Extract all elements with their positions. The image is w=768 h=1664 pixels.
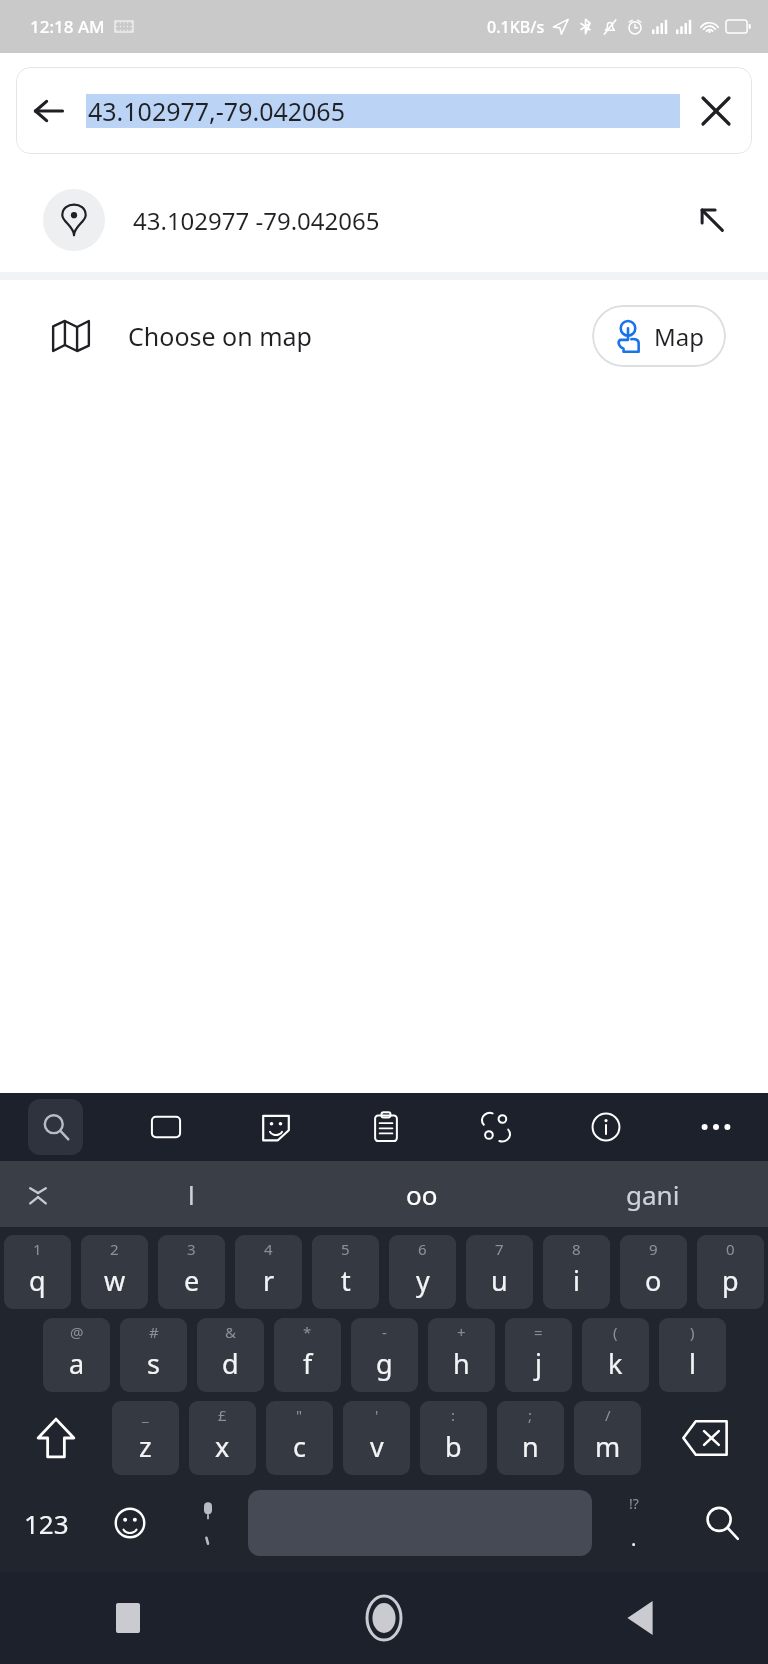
- button[interactable]: Backspace: [641, 1401, 768, 1475]
- button[interactable]: gani: [537, 1161, 768, 1227]
- staticText: 12:18 AM: [30, 15, 105, 38]
- staticText: c: [293, 1428, 306, 1465]
- button[interactable]: :: [420, 1401, 487, 1475]
- button[interactable]: 4: [235, 1235, 302, 1309]
- staticText: 43.102977,-79.042065: [88, 94, 345, 128]
- button[interactable]: +: [428, 1318, 495, 1392]
- button[interactable]: @: [43, 1318, 110, 1392]
- staticText: £: [218, 1405, 227, 1425]
- button[interactable]: ': [343, 1401, 410, 1475]
- button[interactable]: Search: [676, 1484, 768, 1562]
- button[interactable]: *: [274, 1318, 341, 1392]
- staticText: 1: [33, 1239, 42, 1259]
- staticText: 6: [418, 1239, 427, 1259]
- staticText: v: [370, 1428, 384, 1465]
- staticText: -: [382, 1322, 387, 1342]
- staticText: ): [690, 1322, 695, 1342]
- button[interactable]: 123: [0, 1484, 92, 1562]
- button[interactable]: 6: [389, 1235, 456, 1309]
- button[interactable]: Period: [592, 1484, 676, 1562]
- button[interactable]: Back: [512, 1572, 768, 1664]
- button[interactable]: 1: [4, 1235, 71, 1309]
- button[interactable]: (: [582, 1318, 649, 1392]
- staticText: h: [453, 1345, 470, 1382]
- staticText: *: [303, 1322, 312, 1342]
- staticText: f: [303, 1345, 313, 1382]
- staticText: 2: [110, 1239, 119, 1259]
- button[interactable]: Emoji: [92, 1484, 168, 1562]
- staticText: 9: [649, 1239, 658, 1259]
- button[interactable]: &: [197, 1318, 264, 1392]
- button[interactable]: #: [120, 1318, 187, 1392]
- staticText: l: [188, 1177, 195, 1212]
- button[interactable]: ;: [497, 1401, 564, 1475]
- button[interactable]: /: [574, 1401, 641, 1475]
- button[interactable]: 3: [158, 1235, 225, 1309]
- staticText: Choose on map: [128, 319, 312, 353]
- button[interactable]: 8: [543, 1235, 610, 1309]
- button[interactable]: Choose on map: [0, 280, 592, 392]
- button[interactable]: Clipboard: [358, 1099, 414, 1155]
- button[interactable]: l: [76, 1161, 306, 1227]
- button[interactable]: 9: [620, 1235, 687, 1309]
- staticText: oo: [406, 1177, 438, 1212]
- button[interactable]: Insert suggestion: [680, 188, 744, 252]
- button[interactable]: 5: [312, 1235, 379, 1309]
- staticText: +: [457, 1322, 466, 1342]
- button[interactable]: Stickers: [248, 1099, 304, 1155]
- staticText: :: [451, 1405, 456, 1425]
- button[interactable]: 0: [697, 1235, 764, 1309]
- staticText: 0: [726, 1239, 735, 1259]
- button[interactable]: Search: [28, 1099, 83, 1155]
- staticText: s: [147, 1345, 160, 1382]
- staticText: (: [613, 1322, 618, 1342]
- button[interactable]: Shift: [0, 1401, 112, 1475]
- button[interactable]: 43.102977 -79.042065: [0, 168, 768, 272]
- staticText: a: [69, 1345, 85, 1382]
- staticText: ": [296, 1405, 303, 1425]
- button[interactable]: Translate: [468, 1099, 524, 1155]
- button[interactable]: oo: [306, 1161, 537, 1227]
- staticText: ': [375, 1405, 379, 1425]
- staticText: n: [522, 1428, 539, 1465]
- staticText: ;: [528, 1405, 533, 1425]
- staticText: _: [142, 1405, 149, 1425]
- staticText: 5: [341, 1239, 350, 1259]
- staticText: =: [534, 1322, 543, 1342]
- button[interactable]: =: [505, 1318, 572, 1392]
- button[interactable]: -: [351, 1318, 418, 1392]
- button[interactable]: ): [659, 1318, 726, 1392]
- staticText: 0.1KB/s: [487, 16, 545, 38]
- button[interactable]: 2: [81, 1235, 148, 1309]
- staticText: gani: [626, 1177, 680, 1212]
- staticText: /: [605, 1405, 611, 1425]
- staticText: r: [263, 1262, 275, 1299]
- staticText: !?: [629, 1494, 639, 1513]
- button[interactable]: Back: [16, 67, 752, 154]
- staticText: y: [416, 1262, 430, 1299]
- button[interactable]: Info: [578, 1099, 634, 1155]
- staticText: g: [376, 1345, 393, 1382]
- staticText: @: [70, 1322, 84, 1342]
- staticText: u: [491, 1262, 508, 1299]
- button[interactable]: Back: [16, 78, 82, 144]
- staticText: &: [225, 1322, 236, 1342]
- button[interactable]: Map: [592, 305, 726, 367]
- staticText: 8: [572, 1239, 581, 1259]
- button[interactable]: _: [112, 1401, 179, 1475]
- staticText: 43.102977 -79.042065: [133, 204, 380, 237]
- button[interactable]: Voice input and comma: [168, 1484, 248, 1562]
- button[interactable]: Home: [256, 1572, 512, 1664]
- staticText: x: [215, 1428, 230, 1465]
- button[interactable]: Clear: [680, 75, 752, 147]
- button[interactable]: 7: [466, 1235, 533, 1309]
- button[interactable]: Recents: [0, 1572, 256, 1664]
- staticText: z: [139, 1428, 152, 1465]
- button[interactable]: More options: [688, 1099, 744, 1155]
- button[interactable]: Collapse suggestions: [0, 1161, 76, 1227]
- button[interactable]: £: [189, 1401, 256, 1475]
- button[interactable]: GIF: [138, 1099, 194, 1155]
- staticText: 4: [264, 1239, 273, 1259]
- button[interactable]: ": [266, 1401, 333, 1475]
